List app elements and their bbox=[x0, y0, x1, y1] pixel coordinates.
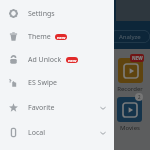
button[interactable]: Favorite bbox=[0, 96, 114, 119]
button[interactable]: Settings bbox=[0, 2, 114, 25]
button[interactable]: Recorder bbox=[118, 58, 143, 83]
staticText: Analyze bbox=[119, 33, 141, 41]
staticText: Theme bbox=[28, 32, 51, 42]
button[interactable]: Analyze bbox=[110, 30, 150, 43]
button[interactable]: Movies bbox=[117, 97, 142, 122]
staticText: 2 bbox=[138, 94, 141, 100]
button[interactable]: ES Swipe bbox=[0, 71, 114, 94]
staticText: NEW bbox=[132, 55, 143, 61]
staticText: Movies bbox=[120, 124, 140, 132]
staticText: Recorder bbox=[117, 85, 143, 93]
button[interactable]: Ad Unlock bbox=[0, 48, 114, 71]
staticText: Settings bbox=[28, 9, 55, 19]
staticText: new bbox=[68, 58, 77, 63]
staticText: ES Swipe bbox=[28, 78, 57, 88]
button[interactable]: Theme bbox=[0, 25, 114, 48]
staticText: Ad Unlock bbox=[28, 55, 62, 65]
button[interactable]: Local bbox=[0, 121, 114, 144]
staticText: Local bbox=[28, 128, 45, 138]
staticText: new bbox=[57, 35, 66, 40]
staticText: Favorite bbox=[28, 103, 55, 113]
